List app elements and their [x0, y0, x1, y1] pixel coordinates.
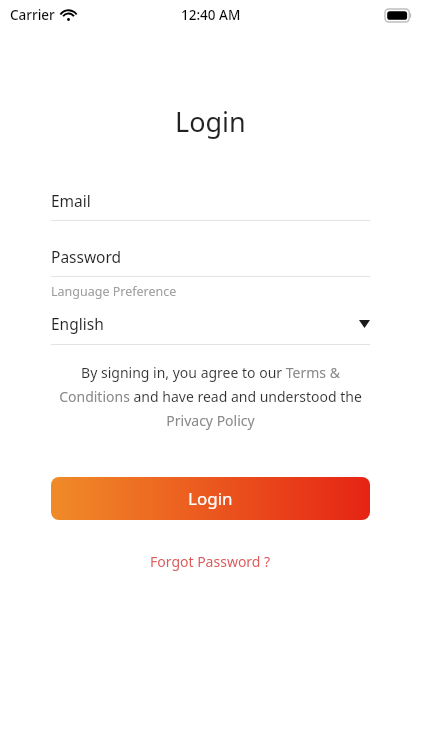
button[interactable]: Forgot Password ? — [142, 548, 279, 575]
button[interactable]: Login — [51, 477, 370, 520]
staticText: Login — [188, 487, 233, 510]
staticText: English — [51, 313, 359, 334]
button[interactable]: Email — [51, 190, 370, 211]
staticText: By signing in, you agree to our Terms & … — [51, 363, 370, 430]
staticText: Forgot Password ? — [150, 552, 271, 571]
staticText: Carrier — [10, 6, 55, 24]
staticText: Language Preference — [51, 283, 177, 300]
button[interactable]: English — [51, 313, 370, 334]
staticText: Password — [51, 246, 122, 267]
button[interactable]: Password — [51, 246, 370, 267]
other: Select language — [359, 320, 370, 328]
staticText: 12:40 AM — [181, 6, 241, 24]
staticText: Login — [175, 103, 246, 140]
staticText: Email — [51, 190, 91, 211]
